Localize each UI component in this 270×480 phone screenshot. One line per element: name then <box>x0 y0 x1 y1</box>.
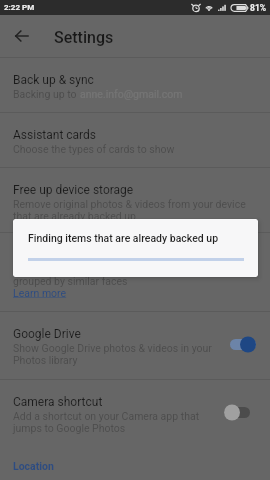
staticText: Backing up to <box>13 88 80 100</box>
staticText: that are already backed up <box>13 210 136 222</box>
button[interactable]: Back <box>0 15 42 57</box>
button[interactable]: Learn more <box>13 287 67 299</box>
staticText: Location <box>13 460 54 472</box>
button[interactable]: Back up & sync <box>0 58 270 112</box>
staticText: Free up device storage <box>13 183 134 197</box>
staticText: Show Google Drive photos & videos in you… <box>13 342 212 354</box>
button[interactable]: Location <box>0 443 270 480</box>
button[interactable]: Group similar faces <box>0 233 270 311</box>
button[interactable]: Assistant cards <box>0 113 270 167</box>
staticText: Assistant cards <box>13 128 97 142</box>
staticText: Group similar faces <box>13 248 117 262</box>
staticText: Choose the types of cards to show <box>13 143 175 155</box>
staticText: jumps to Google Photos <box>13 422 126 434</box>
staticText: Settings <box>54 28 114 47</box>
button[interactable]: Switch on <box>230 336 256 353</box>
staticText: Google Drive <box>13 327 81 341</box>
staticText: 2:22 PM <box>4 3 35 12</box>
staticText: Back up & sync <box>13 73 94 87</box>
staticText: grouped by similar faces <box>13 275 128 287</box>
staticText: Remove original photos & videos from you… <box>13 198 246 210</box>
staticText: Add a shortcut on your Camera app that <box>13 410 200 422</box>
button[interactable]: Switch off <box>230 404 256 421</box>
staticText: anne.info@gmail.com <box>80 88 183 100</box>
staticText: 81% <box>250 3 267 13</box>
staticText: Finding items that are already backed up <box>28 232 219 244</box>
staticText: Camera shortcut <box>13 395 103 409</box>
button[interactable]: Google Drive <box>0 312 270 379</box>
staticText: Photos library <box>13 354 78 366</box>
button[interactable]: Free up device storage <box>0 168 270 232</box>
button[interactable]: Camera shortcut <box>0 380 270 443</box>
